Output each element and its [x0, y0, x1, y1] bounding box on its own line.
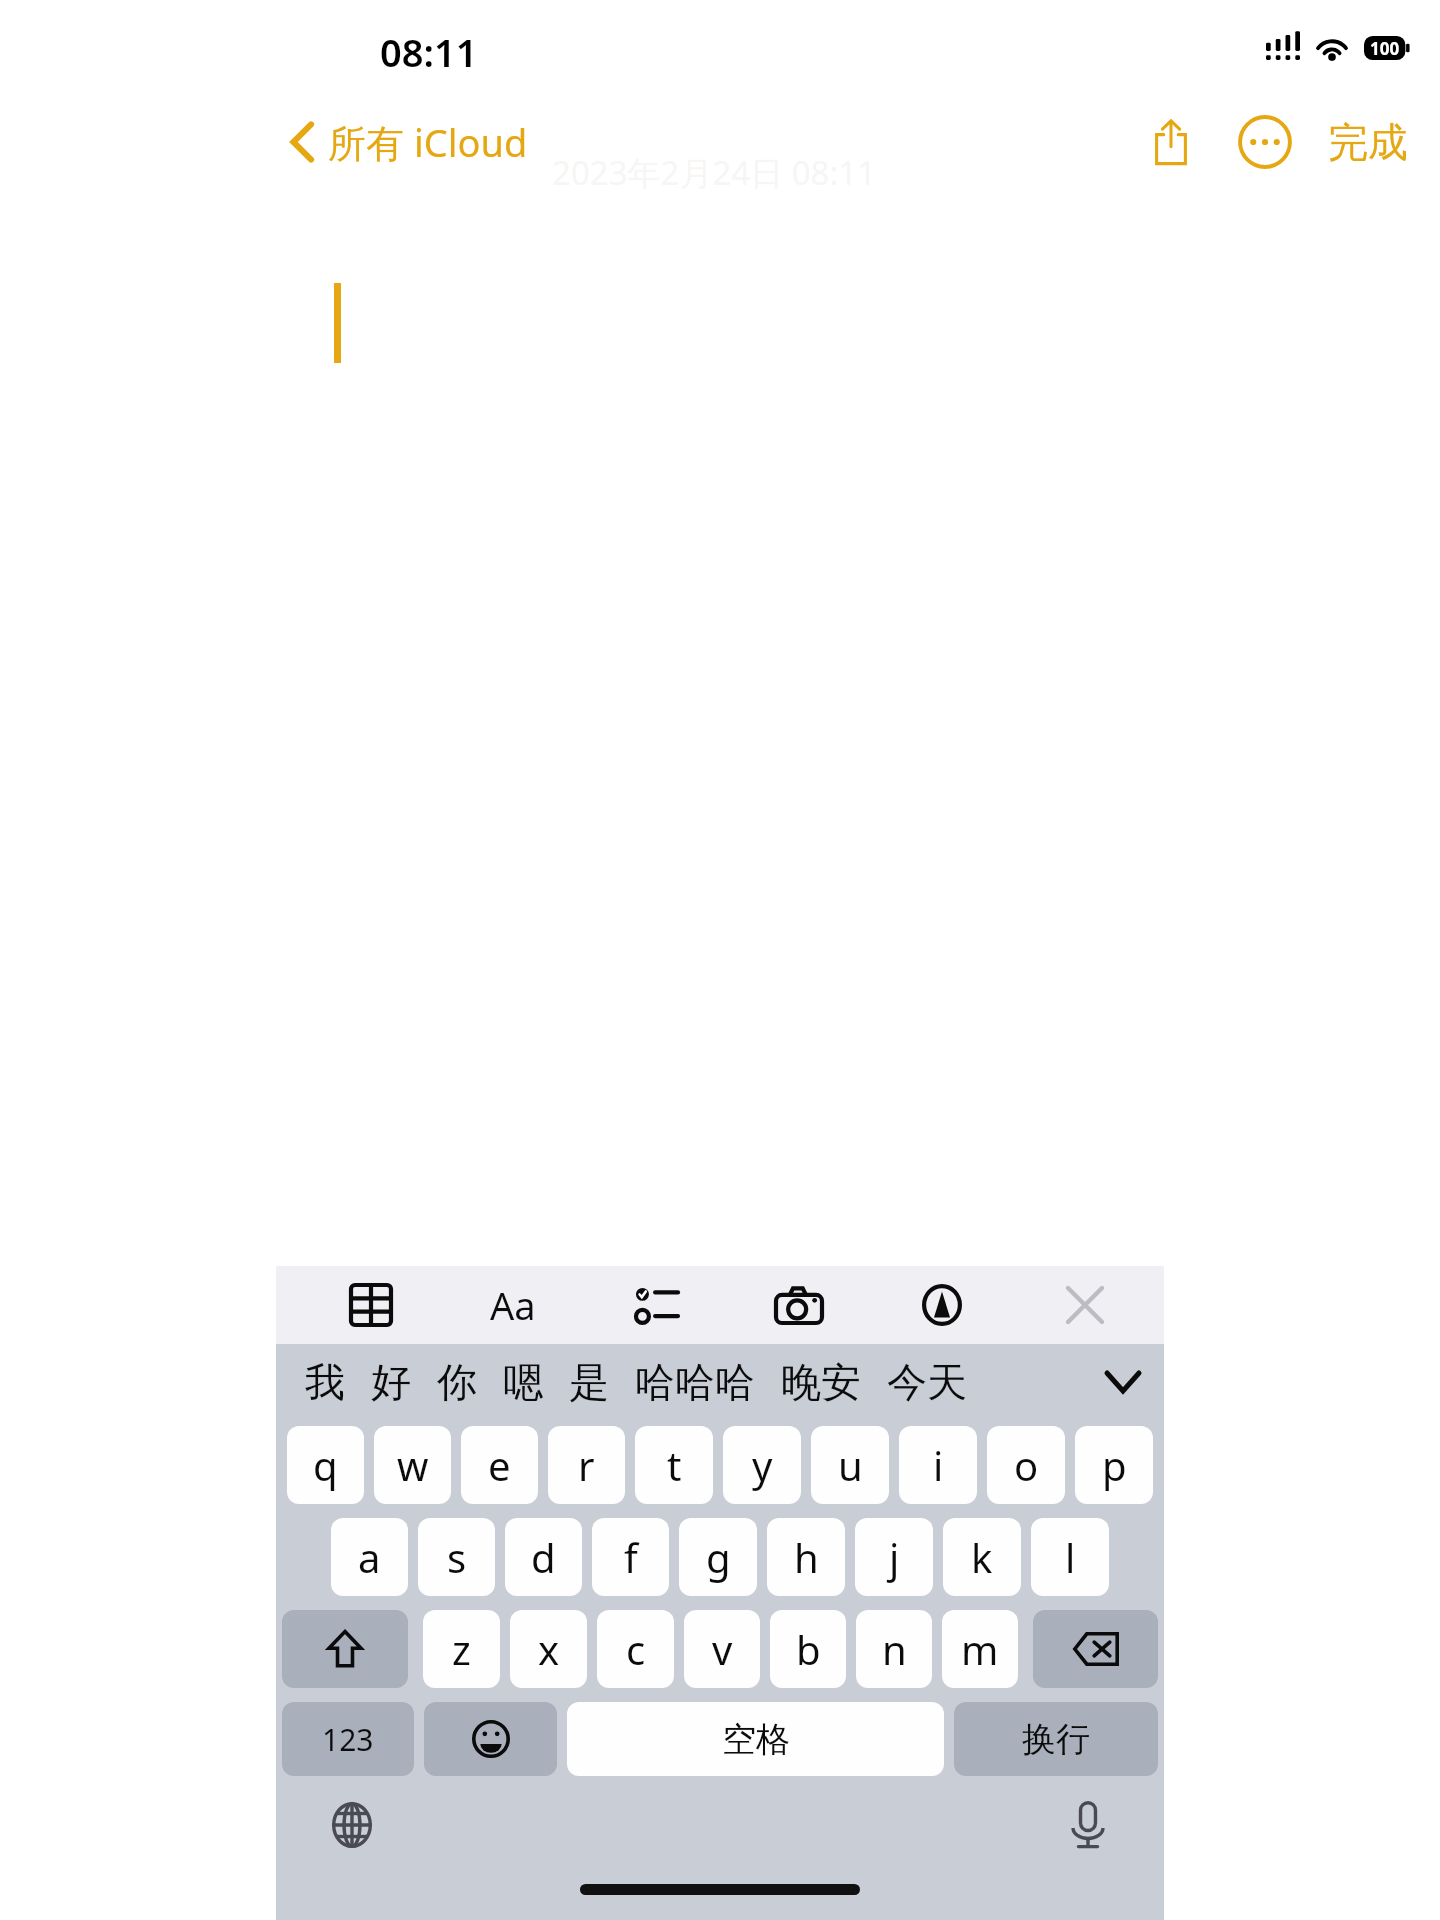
button[interactable]: Text format [474, 1269, 552, 1341]
staticText: 空格 [722, 1718, 790, 1761]
staticText: n [882, 1622, 907, 1676]
button[interactable]: 我 [292, 1351, 358, 1413]
button[interactable]: Table [332, 1269, 410, 1341]
staticText: w [397, 1438, 429, 1492]
staticText: q [313, 1438, 338, 1492]
button[interactable]: Return [954, 1702, 1158, 1776]
button[interactable]: d [505, 1518, 582, 1596]
button[interactable]: Numbers [282, 1702, 414, 1776]
button[interactable]: 是 [556, 1351, 622, 1413]
staticText: k [971, 1530, 993, 1584]
button[interactable]: a [331, 1518, 408, 1596]
button[interactable]: Change keyboard [314, 1787, 390, 1863]
button[interactable]: q [287, 1426, 364, 1504]
staticText: 嗯 [503, 1357, 543, 1407]
staticText: t [667, 1438, 682, 1492]
button[interactable]: Emoji [424, 1702, 557, 1776]
button[interactable]: o [987, 1426, 1065, 1504]
button[interactable]: 晚安 [768, 1351, 874, 1413]
staticText: 100 [1370, 37, 1400, 60]
button[interactable]: w [374, 1426, 451, 1504]
button[interactable]: Close keyboard [1046, 1269, 1124, 1341]
staticText: o [1014, 1438, 1039, 1492]
button[interactable]: e [461, 1426, 538, 1504]
staticText: v [712, 1622, 733, 1676]
staticText: 所有 iCloud [328, 116, 528, 168]
button[interactable]: h [767, 1518, 845, 1596]
staticText: 你 [437, 1357, 477, 1407]
staticText: 今天 [887, 1357, 967, 1407]
staticText: p [1102, 1438, 1127, 1492]
button[interactable]: 嗯 [490, 1351, 556, 1413]
button[interactable]: p [1075, 1426, 1153, 1504]
button[interactable]: y [723, 1426, 801, 1504]
staticText: 123 [322, 1719, 374, 1760]
staticText: c [626, 1622, 646, 1676]
button[interactable]: 你 [424, 1351, 490, 1413]
button[interactable]: x [510, 1610, 587, 1688]
button[interactable]: r [548, 1426, 625, 1504]
staticText: j [889, 1530, 900, 1584]
staticText: x [538, 1622, 560, 1676]
button[interactable]: More options [1226, 103, 1304, 181]
button[interactable]: s [418, 1518, 495, 1596]
button[interactable]: m [942, 1610, 1018, 1688]
button[interactable]: i [899, 1426, 977, 1504]
button[interactable]: 今天 [874, 1351, 980, 1413]
staticText: 哈哈哈 [635, 1357, 755, 1407]
staticText: b [796, 1622, 821, 1676]
button[interactable]: 哈哈哈 [622, 1351, 768, 1413]
button[interactable]: Checklist [617, 1269, 695, 1341]
staticText: 晚安 [781, 1357, 861, 1407]
button[interactable]: c [597, 1610, 674, 1688]
staticText: 换行 [1022, 1718, 1090, 1761]
button[interactable]: u [811, 1426, 889, 1504]
button[interactable]: b [770, 1610, 846, 1688]
button[interactable]: Markup [903, 1269, 981, 1341]
button[interactable]: l [1031, 1518, 1109, 1596]
staticText: 好 [371, 1357, 411, 1407]
staticText: d [531, 1530, 556, 1584]
staticText: y [752, 1438, 773, 1492]
staticText: 完成 [1328, 117, 1408, 167]
staticText: m [961, 1622, 999, 1676]
staticText: 2023年2月24日 08:11 [552, 150, 877, 195]
staticText: 我 [305, 1357, 345, 1407]
staticText: g [706, 1530, 731, 1584]
staticText: h [794, 1530, 819, 1584]
staticText: l [1065, 1530, 1076, 1584]
staticText: a [358, 1530, 381, 1584]
button[interactable]: 好 [358, 1351, 424, 1413]
button[interactable]: v [684, 1610, 760, 1688]
button[interactable]: Share [1132, 103, 1210, 181]
staticText: i [933, 1438, 944, 1492]
button[interactable]: Shift [282, 1610, 408, 1688]
staticText: 08:11 [380, 26, 478, 78]
staticText: Aa [490, 1279, 536, 1331]
button[interactable]: 空格 [567, 1702, 944, 1776]
button[interactable]: Dictation [1050, 1787, 1126, 1863]
staticText: f [624, 1530, 638, 1584]
button[interactable]: f [592, 1518, 669, 1596]
staticText: 是 [569, 1357, 609, 1407]
button[interactable]: 所有 iCloud [290, 116, 528, 168]
button[interactable]: t [635, 1426, 713, 1504]
button[interactable]: n [856, 1610, 932, 1688]
button[interactable]: j [855, 1518, 933, 1596]
staticText: s [447, 1530, 467, 1584]
staticText: u [838, 1438, 863, 1492]
button[interactable]: g [679, 1518, 757, 1596]
button[interactable]: k [943, 1518, 1021, 1596]
button[interactable]: 完成 [1318, 105, 1418, 179]
button[interactable]: Backspace [1033, 1610, 1158, 1688]
button[interactable]: z [423, 1610, 500, 1688]
staticText: r [578, 1438, 595, 1492]
button[interactable]: Camera [760, 1269, 838, 1341]
staticText: e [488, 1438, 511, 1492]
button[interactable]: Hide candidates [1094, 1348, 1152, 1416]
staticText: z [452, 1622, 471, 1676]
